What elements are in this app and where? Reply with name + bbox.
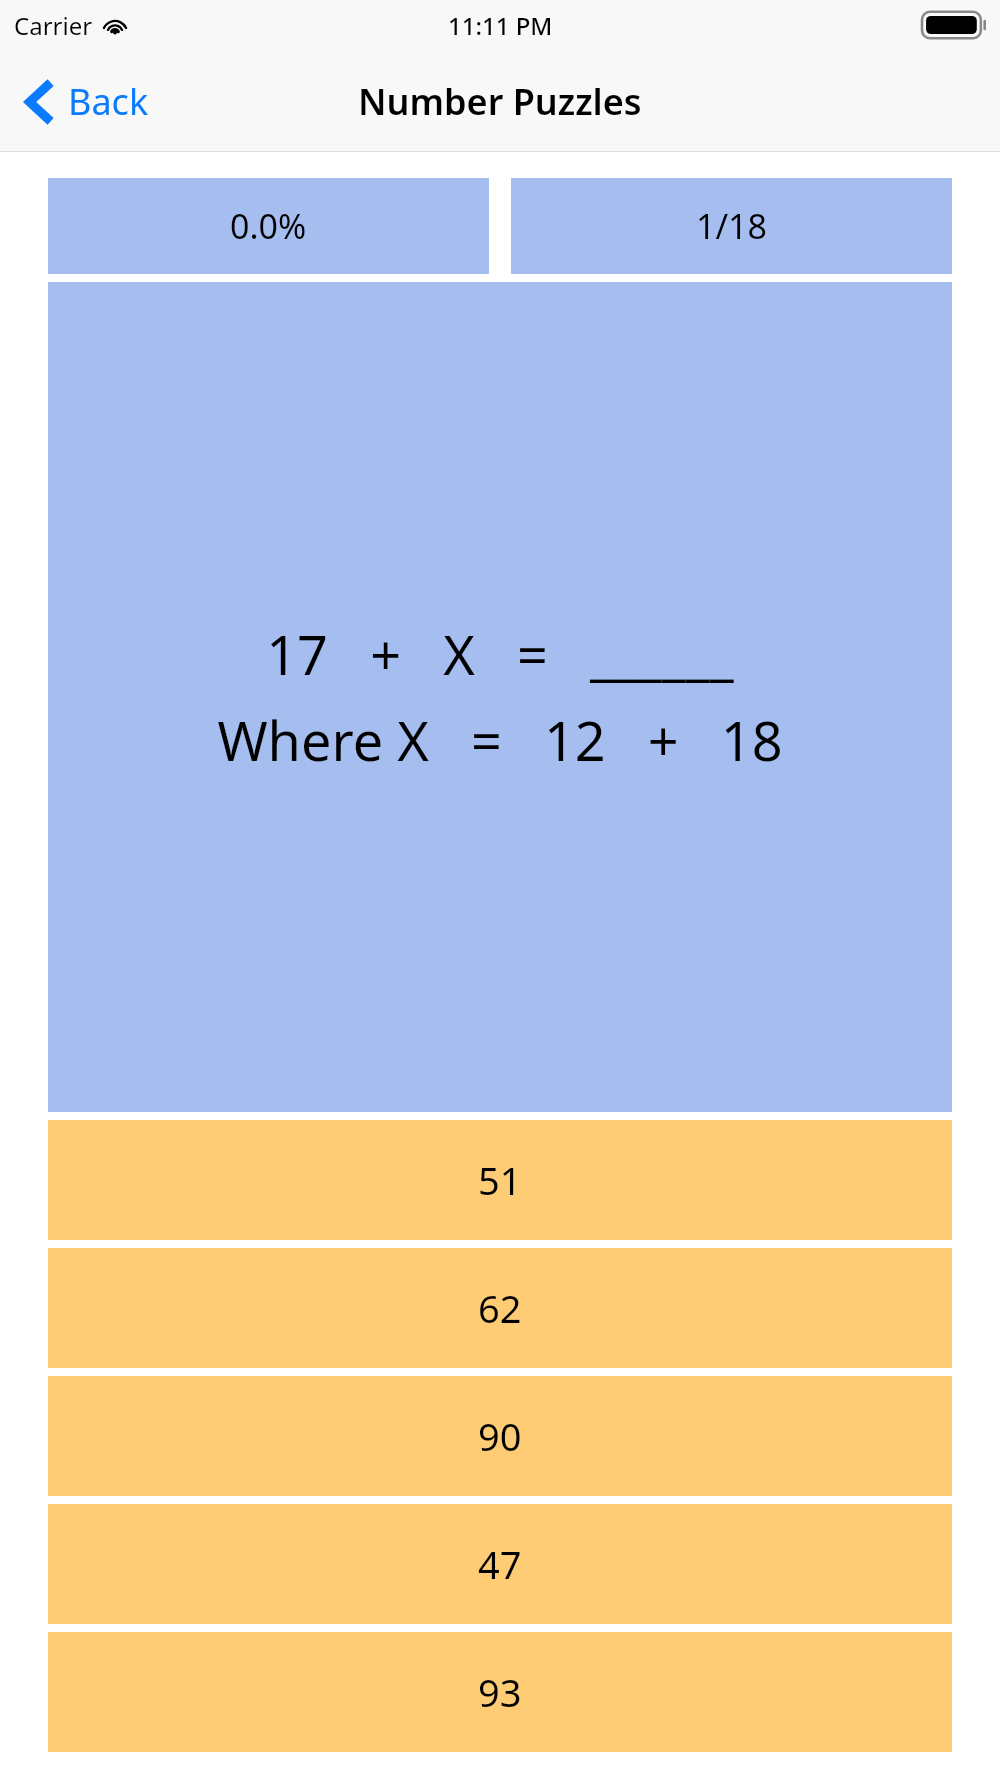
staticText: 47 [478, 1538, 522, 1590]
button[interactable]: 62 [48, 1248, 952, 1368]
button[interactable]: 47 [48, 1504, 952, 1624]
button[interactable]: 51 [48, 1120, 952, 1240]
staticText: 11:11 PM [448, 9, 553, 42]
staticText: Back [68, 77, 149, 126]
button[interactable]: Back [0, 69, 167, 134]
staticText: Where X = 12 + 18 [217, 703, 783, 777]
button[interactable]: 90 [48, 1376, 952, 1496]
staticText: 51 [478, 1154, 522, 1206]
staticText: 0.0% [230, 203, 307, 249]
staticText: Carrier [14, 9, 93, 42]
staticText: 90 [478, 1410, 522, 1462]
button[interactable]: 93 [48, 1632, 952, 1752]
staticText: 62 [478, 1282, 522, 1334]
button[interactable]: 0.0% [48, 178, 489, 274]
staticText: 1/18 [696, 203, 767, 249]
button[interactable]: 1/18 [511, 178, 952, 274]
staticText: Number Puzzles [358, 77, 642, 126]
staticText: 17 + X = ______ [266, 617, 734, 691]
staticText: 93 [478, 1666, 522, 1718]
